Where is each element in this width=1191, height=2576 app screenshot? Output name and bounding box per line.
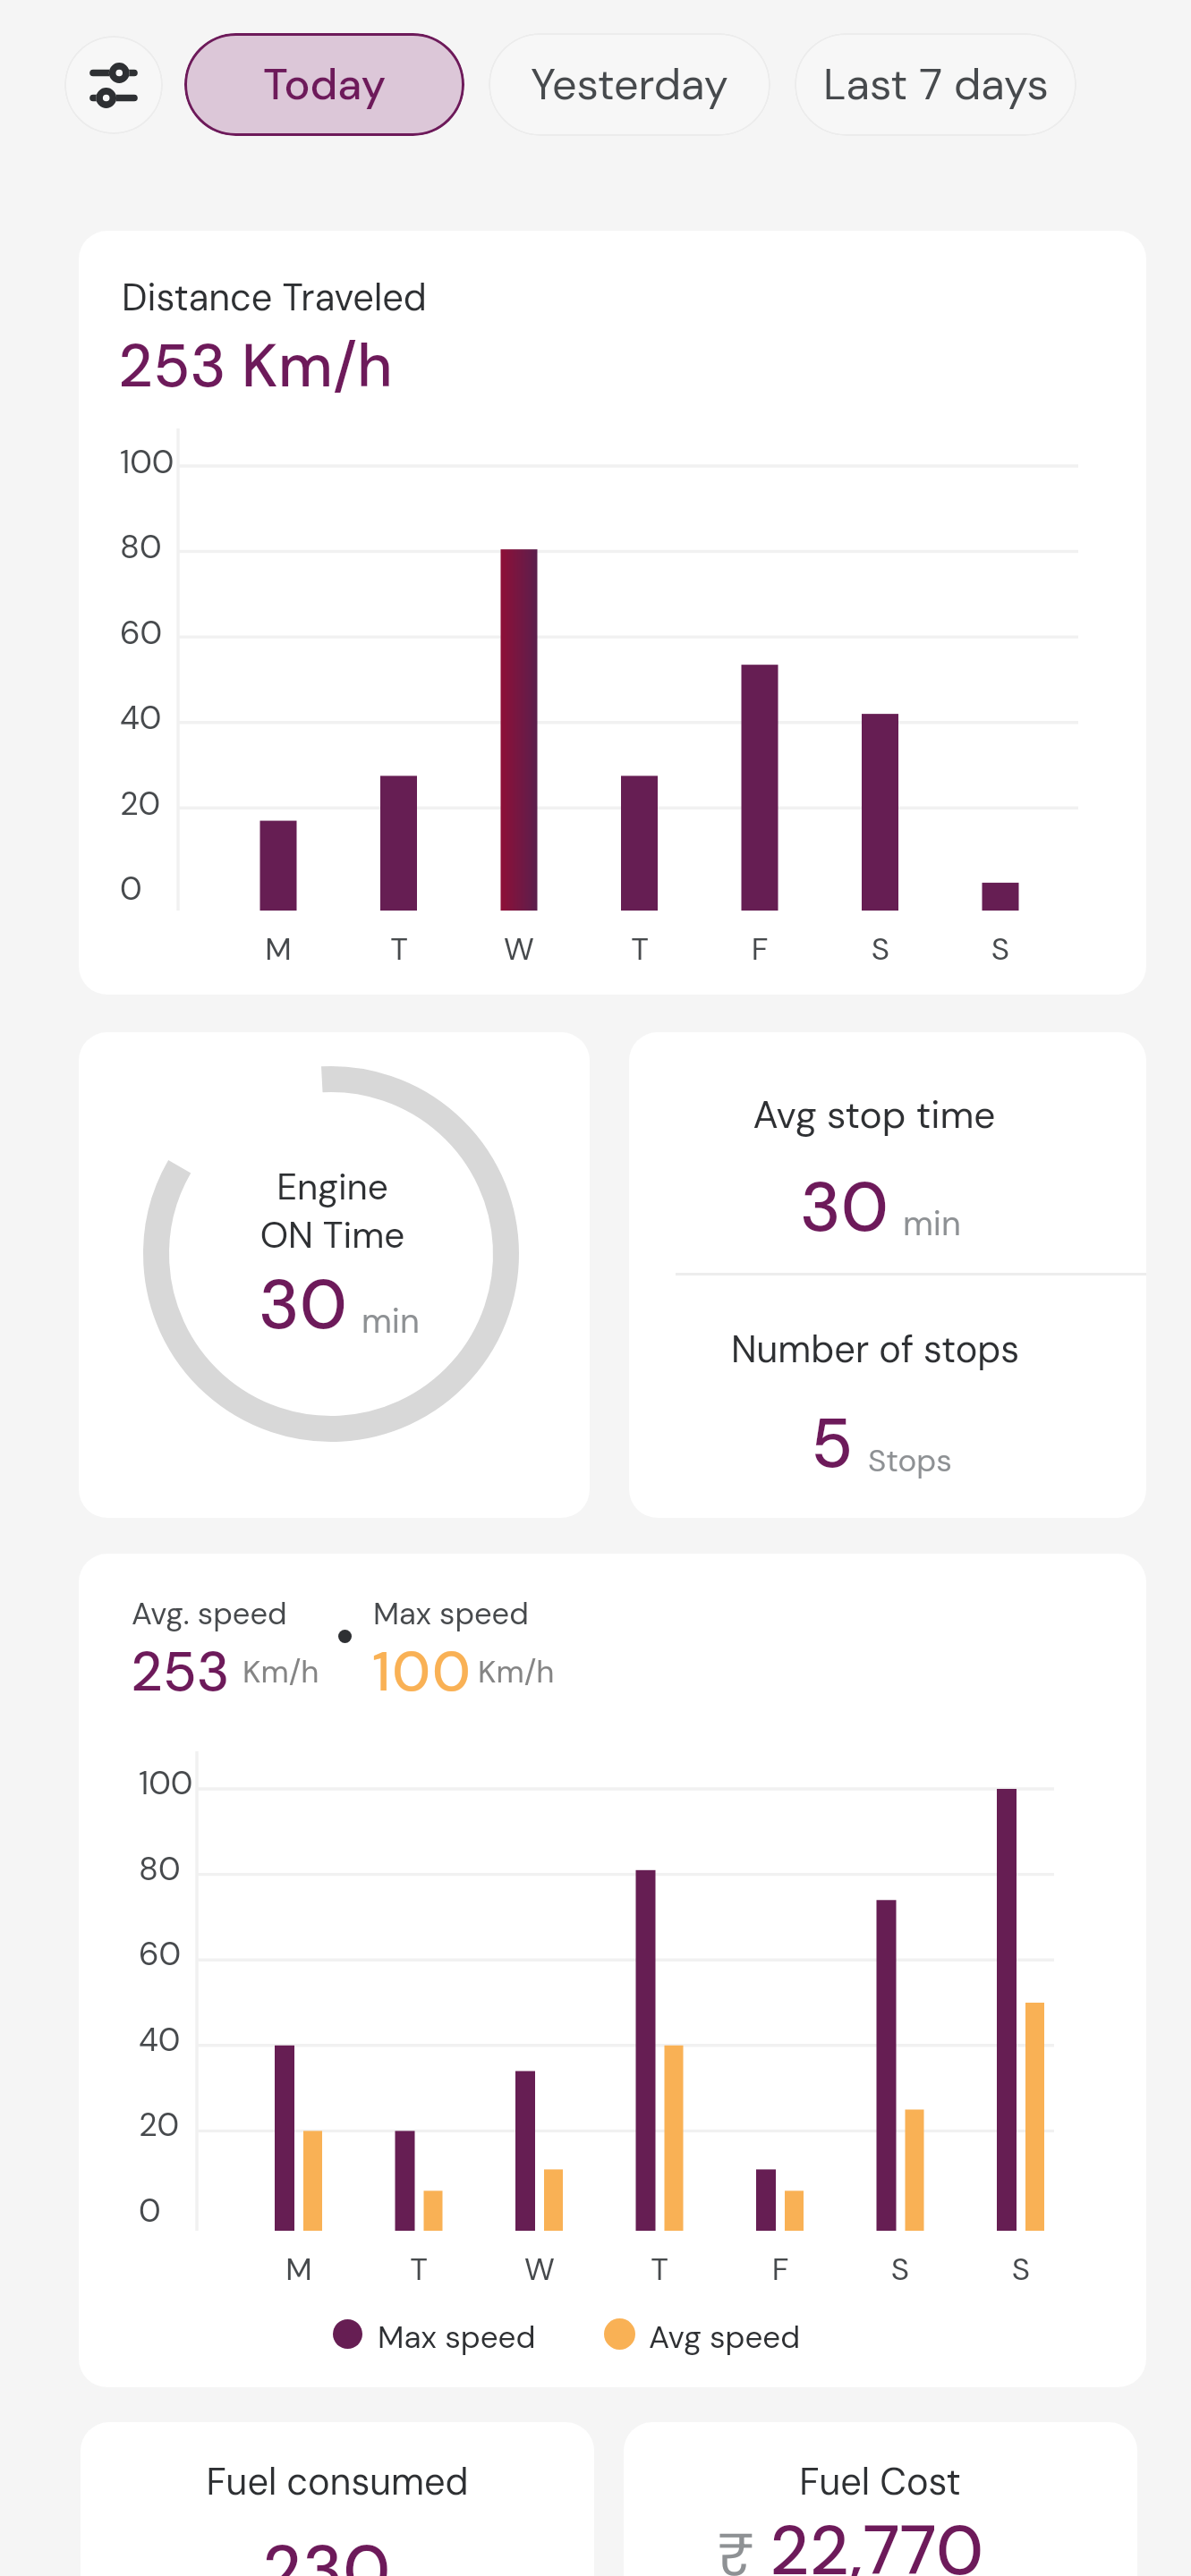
staticText: 0 [120,868,142,910]
staticText: 253 Km/h [118,326,393,405]
staticText: min [362,1299,420,1343]
staticText: S [845,928,916,970]
staticText: S [985,2249,1057,2290]
staticText: 60 [120,612,163,654]
staticText: Fuel Cost [624,2458,1136,2506]
staticText: 40 [139,2019,181,2061]
staticText: Yesterday [531,56,728,113]
staticText: Stops [868,1440,952,1481]
staticText: min [903,1201,961,1245]
staticText: Km/h [478,1651,555,1692]
staticText: 22,770 [770,2506,984,2576]
staticText: S [965,928,1036,970]
staticText: Fuel consumed [81,2458,594,2506]
staticText: 40 [120,697,162,739]
staticText: Distance Traveled [122,274,427,322]
staticText: Last 7 days [823,56,1049,113]
staticText: 100 [372,1635,472,1707]
staticText: Number of stops [629,1326,1121,1374]
staticText: Avg. speed [132,1594,287,1634]
staticText: 5 [811,1399,854,1488]
staticText: Max speed [378,2317,536,2358]
staticText: 30 [800,1163,889,1252]
staticText: W [504,2249,575,2290]
staticText: 80 [139,1848,181,1890]
button[interactable]: Last 7 days [795,33,1076,136]
staticText: 100 [120,441,174,483]
staticText: Engine [79,1164,586,1211]
staticText: 230 [262,2526,391,2576]
staticText: T [383,2249,455,2290]
button[interactable]: Filter settings [64,36,163,134]
staticText: 0 [139,2190,161,2232]
staticText: 60 [139,1933,182,1975]
staticText: F [724,928,795,970]
staticText: ₹ [717,2517,755,2576]
staticText: 80 [120,526,162,568]
staticText: 20 [120,783,161,825]
staticText: Km/h [242,1651,319,1692]
staticText: 253 [131,1635,230,1707]
staticText: F [744,2249,816,2290]
staticText: 100 [139,1762,193,1804]
staticText: M [242,928,314,970]
staticText: 20 [139,2104,180,2146]
staticText: W [483,928,555,970]
staticText: 30 [259,1260,347,1350]
staticText: T [624,2249,695,2290]
staticText: T [604,928,676,970]
staticText: Today [263,56,387,113]
staticText: S [864,2249,936,2290]
button[interactable]: Yesterday [489,33,770,136]
staticText: Avg stop time [629,1090,1119,1140]
button[interactable]: Today [184,33,464,136]
staticText: ON Time [79,1212,586,1259]
staticText: T [363,928,435,970]
staticText: Avg speed [649,2317,801,2358]
staticText: M [263,2249,335,2290]
staticText: Max speed [373,1594,529,1634]
